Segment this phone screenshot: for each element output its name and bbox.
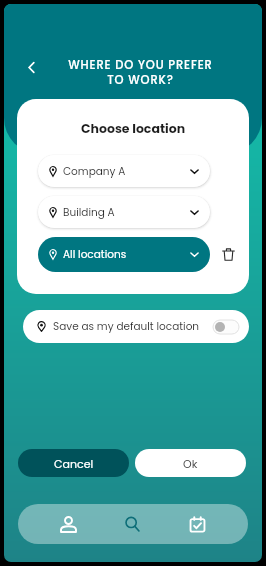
button[interactable]: Search (110, 504, 154, 544)
staticText: Building A (63, 205, 115, 220)
staticText: Save as my default location (53, 319, 200, 334)
staticText: WHERE DO YOU PREFER TO WORK? (68, 57, 213, 88)
staticText: Company A (63, 164, 126, 179)
button[interactable]: Cancel (18, 449, 129, 477)
button[interactable]: Profile (46, 504, 90, 544)
button[interactable]: Building A (38, 196, 210, 228)
staticText: Choose location (81, 120, 186, 137)
button[interactable]: Company A (38, 155, 210, 187)
staticText: All locations (63, 247, 127, 262)
button[interactable]: Back (18, 54, 44, 80)
staticText: Ok (183, 456, 198, 471)
button[interactable]: All locations (38, 237, 210, 272)
button[interactable]: Delete (216, 242, 240, 266)
button[interactable]: Ok (135, 449, 246, 477)
staticText: Cancel (54, 456, 94, 471)
button[interactable]: Save as my default location (23, 310, 249, 343)
button[interactable]: Calendar (175, 504, 219, 544)
